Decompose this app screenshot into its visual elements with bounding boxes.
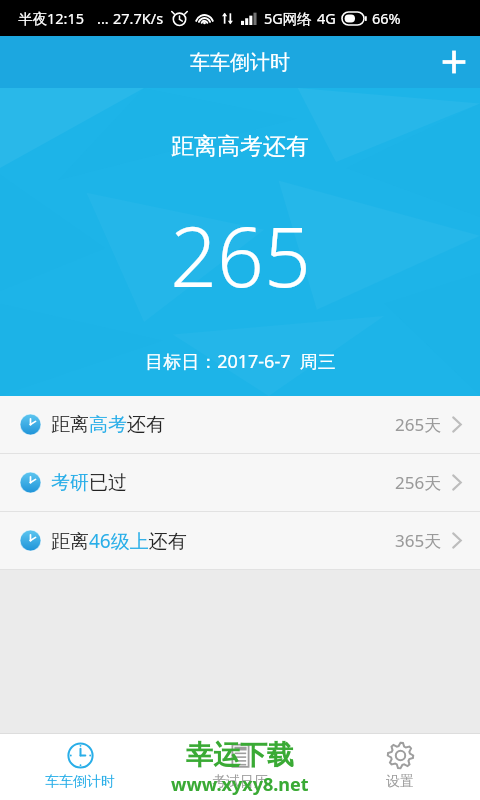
- staticText: 265天: [395, 413, 442, 436]
- staticText: 幸运下载: [186, 738, 294, 772]
- staticText: 设置: [386, 773, 414, 791]
- button[interactable]: Exam calendar: [160, 734, 320, 800]
- staticText: 4G: [317, 8, 336, 28]
- staticText: 半夜12:15: [18, 8, 85, 28]
- other: Settings: [387, 742, 414, 769]
- button[interactable]: 考研已过: [0, 454, 480, 511]
- staticText: 车车倒计时: [45, 773, 115, 791]
- staticText: 27.7K/s: [113, 8, 164, 28]
- staticText: 目标日：2017-6-7 周三: [145, 349, 336, 374]
- staticText: www.xyxy8.net: [171, 772, 309, 797]
- button[interactable]: Settings: [320, 734, 480, 800]
- staticText: 距离高考还有: [51, 413, 165, 437]
- staticText: 考研已过: [51, 471, 127, 495]
- button[interactable]: Add countdown: [428, 36, 480, 88]
- staticText: 车车倒计时: [190, 50, 290, 75]
- staticText: 365天: [395, 529, 442, 552]
- staticText: ...: [97, 8, 109, 28]
- other: Countdown: [67, 742, 94, 769]
- staticText: 5G网络: [264, 8, 312, 28]
- other: Exam calendar: [227, 742, 254, 769]
- staticText: 考试日历: [212, 773, 268, 791]
- staticText: 265: [170, 199, 311, 311]
- staticText: 距离46级上还有: [51, 528, 187, 554]
- button[interactable]: 距离高考还有: [0, 396, 480, 453]
- button[interactable]: Countdown: [0, 734, 160, 800]
- staticText: 256天: [395, 471, 442, 494]
- staticText: 距离高考还有: [171, 132, 309, 161]
- staticText: 66%: [372, 8, 401, 28]
- button[interactable]: 距离46级上还有: [0, 512, 480, 569]
